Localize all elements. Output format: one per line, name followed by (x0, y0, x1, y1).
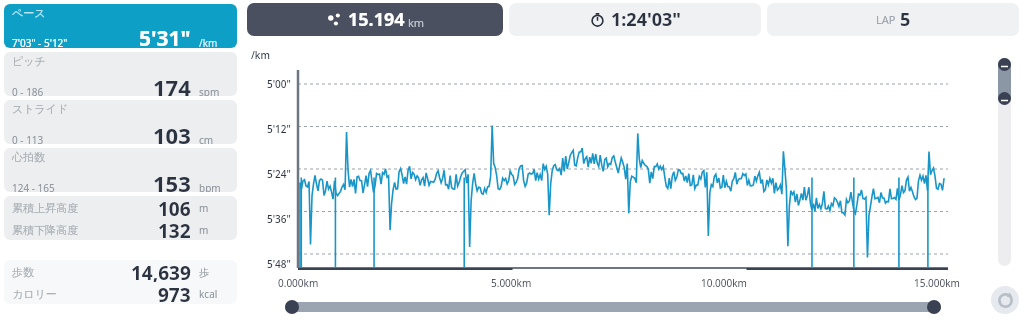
staticText: 7'03" - 5'12" (12, 36, 68, 48)
other: Time (590, 12, 605, 27)
button[interactable]: ピッチ (4, 52, 237, 96)
button[interactable]: Distance (247, 3, 503, 36)
staticText: 5'12" (267, 122, 291, 136)
staticText: LAP (876, 12, 896, 27)
staticText: 5'00" (267, 77, 291, 91)
button[interactable]: ストライド (4, 100, 237, 144)
staticText: /km (251, 48, 270, 62)
button[interactable]: Time (509, 3, 761, 36)
staticText: 歩 (199, 266, 209, 279)
button[interactable]: 歩数 (4, 260, 237, 304)
other: Scroll up (998, 58, 1011, 71)
staticText: 累積下降高度 (12, 223, 78, 237)
staticText: 5'48" (267, 257, 291, 271)
staticText: 5'24" (267, 167, 291, 181)
staticText: 歩数 (12, 265, 34, 279)
staticText: spm (199, 85, 220, 96)
staticText: bpm (199, 181, 221, 192)
staticText: ピッチ (12, 54, 46, 68)
button[interactable] (998, 58, 1011, 266)
staticText: 5.000km (491, 276, 532, 290)
button[interactable]: 心拍数 (4, 148, 237, 192)
staticText: m (199, 223, 209, 237)
staticText: 973 (158, 282, 191, 304)
staticText: /km (199, 36, 218, 48)
staticText: 15.000km (914, 276, 960, 290)
staticText: cm (199, 133, 214, 144)
staticText: 106 (158, 196, 191, 218)
staticText: ペース (12, 6, 46, 20)
staticText: 累積上昇高度 (12, 201, 78, 215)
other: Scroll down (998, 92, 1011, 105)
staticText: 5'31" (139, 24, 191, 48)
button[interactable]: 累積上昇高度 (4, 196, 237, 240)
staticText: 0 - 113 (12, 133, 44, 144)
staticText: 14,639 (131, 260, 191, 282)
staticText: 0.000km (278, 276, 319, 290)
staticText: カロリー (12, 287, 57, 301)
staticText: 132 (158, 218, 191, 240)
staticText: m (199, 201, 209, 215)
other: Range end (927, 300, 941, 314)
button[interactable]: Range start (285, 300, 941, 314)
button[interactable]: LAP (767, 3, 1019, 36)
staticText: 153 (153, 168, 191, 192)
staticText: ストライド (12, 102, 69, 116)
staticText: 心拍数 (12, 150, 45, 164)
staticText: 10.000km (701, 276, 747, 290)
button[interactable]: Reload (991, 286, 1019, 314)
staticText: 1:24'03" (611, 7, 681, 32)
other: Distance (326, 12, 342, 28)
button[interactable]: ペース (4, 4, 237, 48)
other: Range start (285, 300, 299, 314)
staticText: 15.194 (348, 7, 405, 32)
staticText: 124 - 165 (12, 181, 55, 192)
staticText: km (408, 15, 425, 30)
staticText: 0 - 186 (12, 85, 44, 96)
staticText: 103 (153, 120, 191, 144)
staticText: 5 (900, 7, 911, 32)
staticText: 174 (153, 72, 191, 96)
staticText: kcal (199, 287, 218, 301)
staticText: 5'36" (267, 212, 291, 226)
